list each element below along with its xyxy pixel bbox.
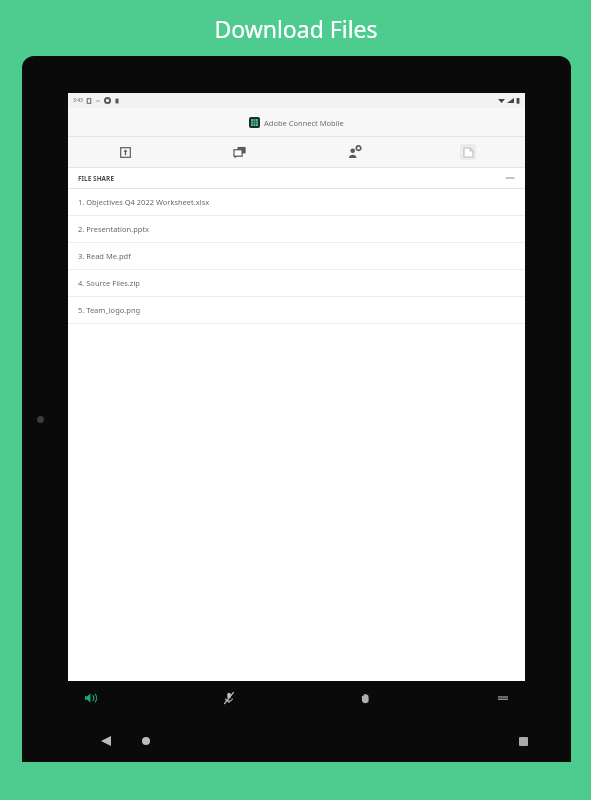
staticText: 1. Objectives Q4 2022 Worksheet.xlsx — [78, 197, 210, 207]
button[interactable]: Raise hand — [297, 681, 434, 715]
button[interactable]: 1. Objectives Q4 2022 Worksheet.xlsx — [68, 189, 525, 215]
staticText: FILE SHARE — [78, 174, 115, 183]
button[interactable]: More options — [434, 681, 571, 715]
staticText: 4. Source Files.zip — [78, 278, 140, 288]
staticText: 2. Presentation.pptx — [78, 224, 150, 234]
button[interactable]: 4. Source Files.zip — [68, 270, 525, 296]
staticText: Download Files — [214, 13, 378, 44]
button[interactable]: Files — [411, 137, 525, 167]
button[interactable]: Attendees — [297, 137, 411, 167]
button[interactable]: 5. Team_logo.png — [68, 297, 525, 323]
staticText: 5. Team_logo.png — [78, 305, 141, 315]
button[interactable]: Home — [134, 729, 158, 753]
button[interactable]: 3. Read Me.pdf — [68, 243, 525, 269]
button[interactable]: Back — [94, 729, 118, 753]
button[interactable]: 2. Presentation.pptx — [68, 216, 525, 242]
staticText: Adobe Connect Mobile — [264, 118, 344, 128]
button[interactable]: Recent apps — [511, 729, 535, 753]
button[interactable]: Microphone muted — [160, 681, 297, 715]
button[interactable]: Speaker — [22, 681, 160, 715]
button[interactable]: Share screen — [68, 137, 183, 167]
staticText: 3:43 — [73, 97, 83, 104]
button[interactable]: Collapse — [503, 171, 517, 185]
staticText: 3. Read Me.pdf — [78, 251, 131, 261]
button[interactable]: Chat — [183, 137, 297, 167]
